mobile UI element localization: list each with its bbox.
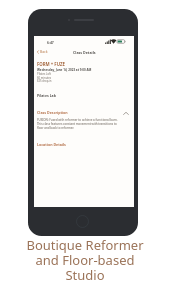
staticText: Pilates Lab [37, 93, 56, 98]
staticText: FUSION: Fused with reformer to achieve a… [37, 118, 122, 130]
staticText: Location Details [37, 142, 66, 147]
staticText: 60 minutes [37, 76, 52, 80]
staticText: $25 drop-in [37, 79, 52, 83]
staticText: Class Description [37, 110, 68, 115]
staticText: FORM + FUZE [37, 61, 65, 67]
staticText: Back [40, 49, 48, 54]
button[interactable]: Collapse class description [121, 110, 131, 116]
staticText: Boutique Reformer and Floor-based Studio [26, 236, 144, 284]
staticText: Wednesday, June 14, 2023 at 9:00 AM [37, 68, 92, 72]
staticText: Class Details [73, 50, 96, 55]
staticText: Pilates Loft [37, 72, 51, 76]
staticText: 6:47 [47, 40, 54, 45]
button[interactable]: Back [35, 47, 50, 56]
